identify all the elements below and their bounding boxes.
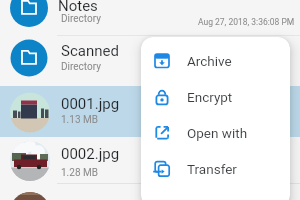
staticText: Archive (187, 53, 232, 69)
button[interactable] (0, 35, 300, 86)
staticText: Directory (61, 13, 101, 25)
button[interactable] (0, 86, 300, 137)
staticText: Scanned (61, 42, 119, 60)
staticText: 0002.jpg (61, 145, 120, 163)
staticText: Encrypt (187, 89, 233, 105)
button[interactable]: Archive (141, 43, 290, 79)
staticText: Open with (187, 125, 248, 141)
button[interactable]: Encrypt (141, 79, 290, 115)
staticText: Transfer (187, 161, 237, 177)
button[interactable]: Transfer (141, 151, 290, 187)
staticText: Directory (61, 61, 101, 73)
staticText: Notes (58, 0, 98, 15)
staticText: 0001.jpg (61, 95, 120, 113)
button[interactable]: Open with (141, 115, 290, 151)
button[interactable] (0, 137, 300, 183)
staticText: Aug 27, 2018, 3:36:08 PM (198, 17, 295, 27)
staticText: 1.28 MB (61, 167, 98, 179)
button[interactable] (0, 0, 300, 35)
staticText: 1.13 MB (61, 114, 98, 126)
